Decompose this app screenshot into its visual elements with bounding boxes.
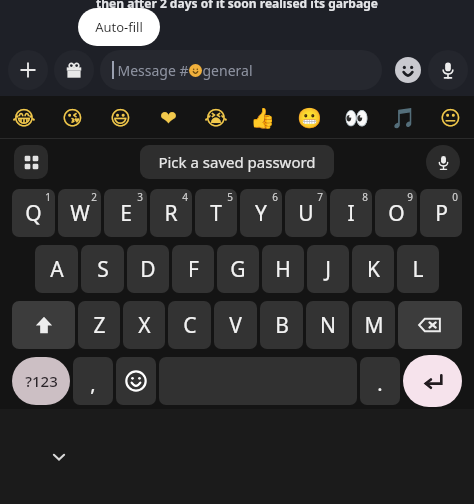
button[interactable]: R	[150, 189, 192, 237]
staticText: L	[412, 255, 424, 284]
staticText: D	[140, 255, 156, 284]
staticText: 8	[362, 190, 368, 204]
staticText: 👀	[344, 106, 369, 129]
staticText: J	[325, 255, 331, 284]
staticText: Auto-fill	[95, 18, 143, 36]
button[interactable]: 😐	[427, 96, 474, 138]
button[interactable]: Message #	[100, 50, 382, 90]
button[interactable]: Clipboard and more	[14, 145, 48, 179]
staticText: ❤️	[160, 106, 177, 129]
button[interactable]: M	[352, 301, 395, 349]
staticText: 👍	[250, 106, 275, 129]
staticText: Y	[255, 199, 267, 228]
button[interactable]: 😃	[96, 96, 144, 138]
button[interactable]: A	[35, 245, 78, 293]
staticText: .	[377, 370, 383, 397]
staticText: 🎵	[391, 106, 416, 129]
button[interactable]: Shift	[12, 301, 75, 349]
staticText: R	[164, 199, 178, 228]
button[interactable]: Auto-fill	[78, 8, 160, 46]
button[interactable]: 😂	[0, 96, 48, 138]
staticText: 6	[272, 190, 278, 204]
button[interactable]: ❤️	[144, 96, 192, 138]
button[interactable]: Voice message	[428, 50, 468, 90]
button[interactable]: Q	[12, 189, 55, 237]
button[interactable]: H	[262, 245, 304, 293]
button[interactable]: 👍	[239, 96, 286, 138]
button[interactable]: Add attachment	[8, 50, 48, 90]
staticText: U	[298, 199, 314, 228]
staticText: 0	[452, 190, 458, 204]
staticText: P	[435, 199, 448, 228]
staticText: Message #	[117, 61, 189, 80]
button[interactable]: Y	[240, 189, 282, 237]
staticText: T	[210, 199, 222, 228]
staticText: V	[229, 311, 242, 340]
button[interactable]: G	[217, 245, 259, 293]
button[interactable]: W	[58, 189, 101, 237]
button[interactable]: V	[214, 301, 257, 349]
button[interactable]: 😭	[192, 96, 239, 138]
staticText: 3	[137, 190, 143, 204]
button[interactable]: D	[127, 245, 169, 293]
staticText: B	[275, 311, 289, 340]
button[interactable]: N	[306, 301, 349, 349]
staticText: E	[120, 199, 132, 228]
staticText: Z	[93, 311, 106, 340]
button[interactable]: L	[397, 245, 439, 293]
staticText: 4	[182, 190, 188, 204]
button[interactable]: .	[360, 357, 400, 405]
staticText: 2	[91, 190, 97, 204]
staticText: 😂	[12, 106, 36, 129]
button[interactable]: K	[352, 245, 394, 293]
staticText: K	[367, 255, 380, 284]
button[interactable]: Z	[78, 301, 120, 349]
button[interactable]: F	[172, 245, 214, 293]
staticText: then after 2 days of it soon realised it…	[96, 0, 378, 11]
button[interactable]: Emoji picker	[388, 50, 428, 90]
button[interactable]: Send a gift	[54, 50, 94, 90]
staticText: ,	[90, 370, 96, 397]
button[interactable]: Enter	[403, 355, 462, 407]
button[interactable]: 😘	[48, 96, 96, 138]
button[interactable]: Voice input	[426, 145, 460, 179]
staticText: N	[320, 311, 336, 340]
button[interactable]: Pick a saved password	[140, 145, 334, 179]
button[interactable]: 😬	[286, 96, 333, 138]
staticText: 5	[227, 190, 233, 204]
staticText: general	[202, 61, 253, 80]
button[interactable]: Backspace	[398, 301, 462, 349]
button[interactable]: 🎵	[380, 96, 427, 138]
button[interactable]: 👀	[333, 96, 380, 138]
button[interactable]: C	[168, 301, 211, 349]
button[interactable]: U	[285, 189, 327, 237]
button[interactable]: O	[375, 189, 417, 237]
button[interactable]: E	[104, 189, 147, 237]
button[interactable]: P	[420, 189, 462, 237]
button[interactable]: I	[330, 189, 372, 237]
button[interactable]: ?123	[12, 357, 70, 405]
button[interactable]: B	[260, 301, 303, 349]
staticText: 😬	[297, 106, 322, 129]
button[interactable]: X	[123, 301, 165, 349]
staticText: 7	[317, 190, 323, 204]
staticText: O	[388, 199, 405, 228]
staticText: Pick a saved password	[158, 152, 316, 172]
staticText: 😭	[204, 106, 228, 129]
button[interactable]: T	[195, 189, 237, 237]
staticText: 1	[45, 190, 51, 204]
staticText: S	[97, 255, 109, 284]
staticText: M	[364, 311, 384, 340]
staticText: W	[70, 199, 90, 228]
staticText: 😘	[62, 106, 83, 129]
button[interactable]: S	[81, 245, 124, 293]
staticText: I	[347, 199, 355, 228]
staticText: ?123	[25, 371, 58, 391]
button[interactable]: J	[307, 245, 349, 293]
button[interactable]: ,	[73, 357, 113, 405]
staticText: 😐	[440, 106, 461, 129]
staticText: G	[230, 255, 246, 284]
button[interactable]: Emoji	[116, 357, 156, 405]
button[interactable]: Hide keyboard	[48, 446, 70, 468]
